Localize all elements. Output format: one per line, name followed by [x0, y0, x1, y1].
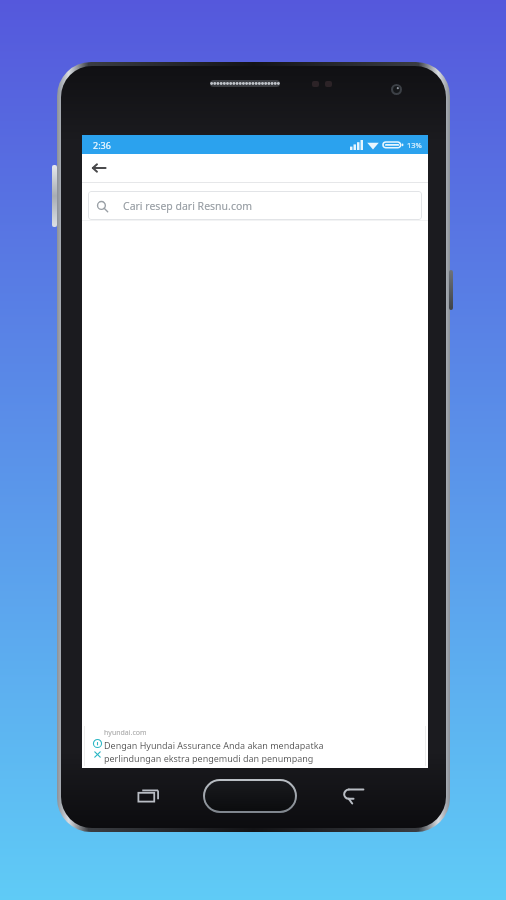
button[interactable]: Recent apps: [136, 786, 160, 806]
staticText: Dengan Hyundai Assurance Anda akan menda…: [104, 739, 324, 751]
staticText: perlindungan ekstra pengemudi dan penump…: [104, 752, 314, 764]
staticText: 2:36: [93, 139, 111, 151]
button[interactable]: Navigate up: [88, 157, 110, 179]
button[interactable]: Cari resep dari Resnu.com: [88, 191, 422, 220]
button[interactable]: hyundai.com: [82, 724, 428, 768]
staticText: 13%: [407, 140, 422, 150]
button[interactable]: Home: [203, 779, 297, 813]
button[interactable]: Close ad: [93, 750, 102, 759]
staticText: hyundai.com: [104, 728, 147, 738]
staticText: Cari resep dari Resnu.com: [123, 199, 253, 213]
button[interactable]: Back: [340, 785, 366, 806]
button[interactable]: Ad information: [93, 739, 102, 748]
